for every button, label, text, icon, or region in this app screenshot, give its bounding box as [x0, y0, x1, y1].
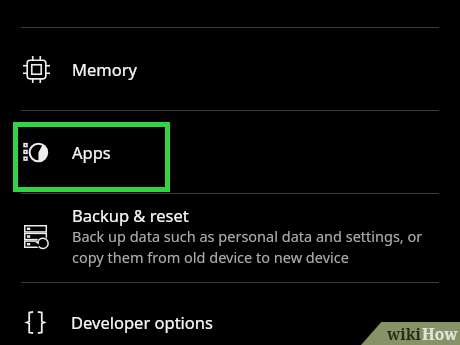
staticText: wiki: [387, 323, 422, 344]
staticText: Back up data such as personal data and s…: [72, 226, 423, 268]
staticText: Developer options: [71, 311, 213, 333]
staticText: Apps: [72, 141, 111, 163]
staticText: Backup & reset: [72, 204, 189, 226]
button[interactable]: Developer options: [0, 283, 460, 345]
staticText: Memory: [72, 58, 137, 80]
button[interactable]: Memory: [0, 28, 460, 110]
staticText: How: [422, 323, 458, 344]
button[interactable]: Backup & reset: [0, 192, 460, 280]
button[interactable]: Apps: [0, 111, 460, 193]
